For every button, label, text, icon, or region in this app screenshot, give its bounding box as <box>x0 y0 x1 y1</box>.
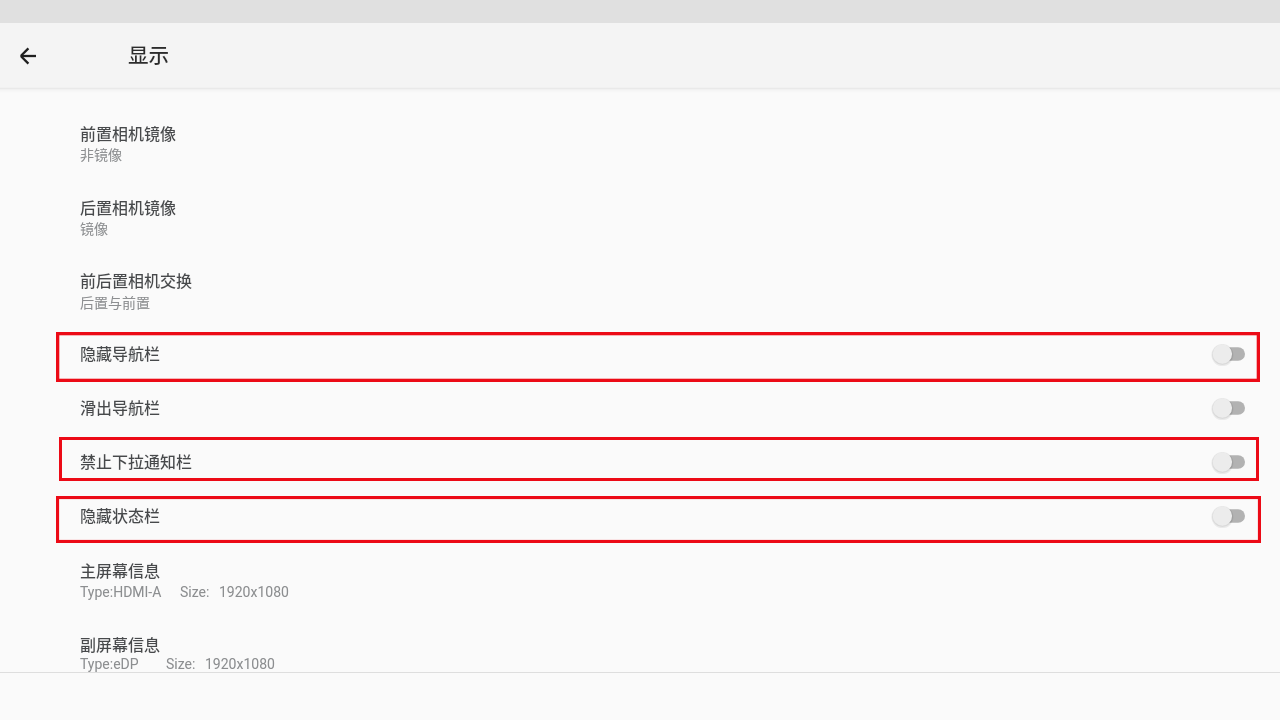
staticText: 后置相机镜像 <box>80 195 177 218</box>
button[interactable]: 后置相机镜像 <box>0 162 1280 235</box>
staticText: Size: <box>166 656 196 672</box>
button[interactable]: 前后置相机交换 <box>0 235 1280 328</box>
staticText: 非镜像 <box>80 144 122 164</box>
button[interactable]: Back <box>4 32 52 80</box>
staticText: Size: <box>180 584 210 600</box>
staticText: 后置与前置 <box>80 292 150 312</box>
staticText: 副屏幕信息 <box>80 632 161 655</box>
button[interactable]: 副屏幕信息 <box>0 619 1280 671</box>
button[interactable]: 隐藏导航栏 switch, off <box>1208 332 1256 376</box>
button[interactable]: 隐藏状态栏 <box>0 490 1280 546</box>
button[interactable]: 禁止下拉通知栏 <box>0 436 1280 490</box>
staticText: 滑出导航栏 <box>80 395 161 418</box>
button[interactable]: 滑出导航栏 switch, off <box>1208 386 1256 430</box>
button[interactable]: 隐藏状态栏 switch, off <box>1208 494 1256 538</box>
button[interactable]: 滑出导航栏 <box>0 382 1280 436</box>
staticText: 隐藏导航栏 <box>80 341 161 364</box>
staticText: 禁止下拉通知栏 <box>80 449 193 472</box>
staticText: 前后置相机交换 <box>80 268 193 291</box>
button[interactable]: 主屏幕信息 <box>0 546 1280 619</box>
staticText: 显示 <box>128 39 170 69</box>
button[interactable]: 隐藏导航栏 <box>0 328 1280 382</box>
staticText: 镜像 <box>80 218 108 238</box>
staticText: Type:eDP <box>80 656 139 672</box>
staticText: 1920x1080 <box>219 584 289 600</box>
staticText: 隐藏状态栏 <box>80 503 161 526</box>
staticText: 主屏幕信息 <box>80 558 161 581</box>
button[interactable]: 前置相机镜像 <box>0 89 1280 162</box>
staticText: Type:HDMI-A <box>80 584 162 600</box>
staticText: 前置相机镜像 <box>80 121 177 144</box>
staticText: 1920x1080 <box>205 656 275 672</box>
button[interactable]: 禁止下拉通知栏 switch, off <box>1208 440 1256 484</box>
